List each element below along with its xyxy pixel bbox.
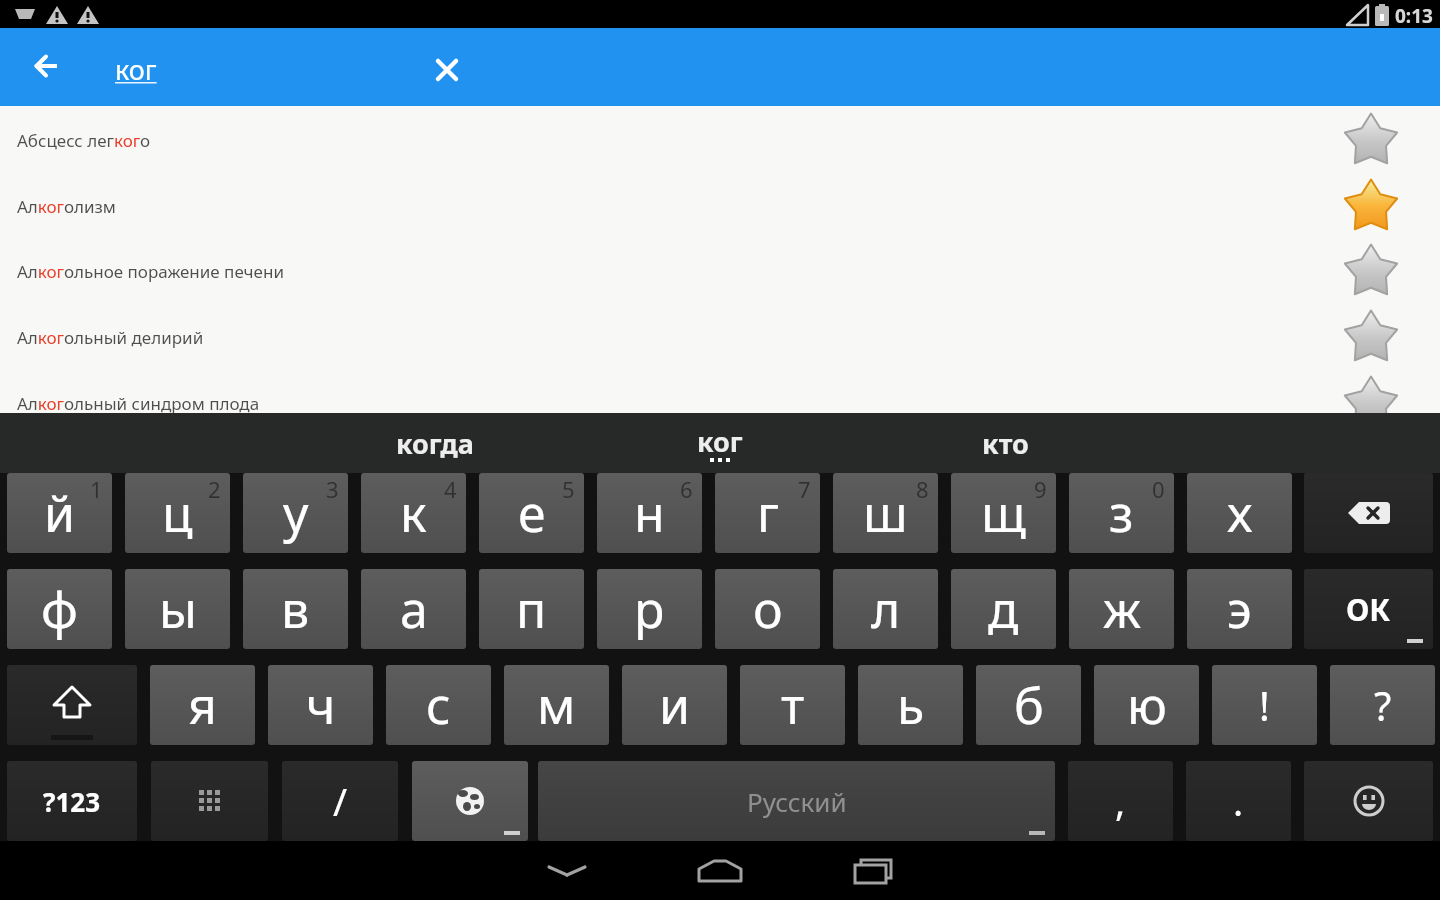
staticText: , <box>1115 775 1126 827</box>
button[interactable]: я <box>150 665 255 745</box>
staticText: ш <box>863 479 908 547</box>
button[interactable]: ь <box>858 665 963 745</box>
button[interactable]: Абсцесс легкого <box>0 107 1440 173</box>
button[interactable]: ш <box>833 473 938 553</box>
button[interactable] <box>1343 112 1399 168</box>
staticText: 0:13 <box>1395 3 1433 29</box>
button[interactable] <box>837 841 909 900</box>
staticText: д <box>988 575 1019 643</box>
button[interactable]: ю <box>1094 665 1199 745</box>
button[interactable] <box>1304 761 1433 841</box>
button[interactable]: ког <box>635 413 805 473</box>
button[interactable]: н <box>597 473 702 553</box>
button[interactable]: кто <box>920 413 1090 473</box>
button[interactable]: ОК <box>1304 569 1433 649</box>
staticText: и <box>659 671 691 739</box>
button[interactable] <box>151 761 268 841</box>
staticText: в <box>281 575 310 643</box>
staticText: 5 <box>562 474 575 504</box>
staticText: 1 <box>90 474 103 504</box>
button[interactable]: л <box>833 569 938 649</box>
button[interactable]: когда <box>350 413 520 473</box>
button[interactable]: з <box>1069 473 1174 553</box>
button[interactable]: о <box>715 569 820 649</box>
staticText: к <box>400 479 427 547</box>
button[interactable]: е <box>479 473 584 553</box>
button[interactable] <box>423 46 471 94</box>
button[interactable]: Русский <box>538 761 1055 841</box>
staticText: Алкогольный синдром плода <box>17 392 260 413</box>
staticText: ?123 <box>43 784 101 819</box>
button[interactable]: и <box>622 665 727 745</box>
button[interactable] <box>1343 309 1399 365</box>
button[interactable]: ц <box>125 473 230 553</box>
button[interactable]: Алкогольный делирий <box>0 304 1440 370</box>
staticText: 2 <box>208 474 221 504</box>
staticText: 6 <box>680 474 693 504</box>
staticText: щ <box>981 479 1026 547</box>
staticText: 8 <box>916 474 929 504</box>
button[interactable]: м <box>504 665 609 745</box>
staticText: л <box>871 575 901 643</box>
button[interactable]: т <box>740 665 845 745</box>
button[interactable]: ч <box>268 665 373 745</box>
button[interactable]: Алкогольное поражение печени <box>0 238 1440 304</box>
staticText: з <box>1109 479 1134 547</box>
staticText: б <box>1014 671 1044 739</box>
staticText: р <box>634 575 665 643</box>
button[interactable]: щ <box>951 473 1056 553</box>
button[interactable]: ?123 <box>7 761 137 841</box>
button[interactable]: с <box>386 665 491 745</box>
staticText: о <box>753 575 783 643</box>
button[interactable]: р <box>597 569 702 649</box>
button[interactable]: ы <box>125 569 230 649</box>
button[interactable]: п <box>479 569 584 649</box>
staticText: 3 <box>326 474 339 504</box>
button[interactable]: . <box>1186 761 1291 841</box>
staticText: Алкогольный делирий <box>17 326 204 349</box>
staticText: 0 <box>1152 474 1165 504</box>
staticText: н <box>634 479 665 547</box>
button[interactable] <box>23 42 71 90</box>
button[interactable]: , <box>1068 761 1173 841</box>
staticText: ь <box>897 671 925 739</box>
staticText: ког <box>115 51 157 88</box>
button[interactable]: ! <box>1212 665 1317 745</box>
button[interactable]: к <box>361 473 466 553</box>
staticText: ч <box>306 671 336 739</box>
button[interactable]: / <box>282 761 398 841</box>
button[interactable]: б <box>976 665 1081 745</box>
button[interactable]: Алкоголизм <box>0 173 1440 239</box>
button[interactable]: ? <box>1330 665 1435 745</box>
button[interactable]: у <box>243 473 348 553</box>
staticText: с <box>426 671 451 739</box>
staticText: когда <box>396 425 474 462</box>
button[interactable]: й <box>7 473 112 553</box>
button[interactable] <box>684 841 756 900</box>
button[interactable]: г <box>715 473 820 553</box>
button[interactable]: а <box>361 569 466 649</box>
staticText: у <box>283 479 309 547</box>
button[interactable]: ж <box>1069 569 1174 649</box>
staticText: 4 <box>444 474 457 504</box>
button[interactable] <box>1343 243 1399 299</box>
button[interactable]: х <box>1187 473 1292 553</box>
button[interactable] <box>7 665 137 745</box>
button[interactable] <box>1343 375 1399 413</box>
button[interactable] <box>1343 178 1399 234</box>
staticText: ж <box>1103 575 1141 643</box>
staticText: ы <box>159 575 197 643</box>
button[interactable]: в <box>243 569 348 649</box>
staticText: 9 <box>1034 474 1047 504</box>
staticText: ког <box>697 423 743 460</box>
staticText: кто <box>982 425 1029 462</box>
button[interactable] <box>1304 473 1433 553</box>
button[interactable] <box>531 841 603 900</box>
button[interactable]: ф <box>7 569 112 649</box>
button[interactable]: д <box>951 569 1056 649</box>
button[interactable]: э <box>1187 569 1292 649</box>
button[interactable]: ког <box>100 49 400 89</box>
staticText: . <box>1233 775 1244 827</box>
button[interactable]: Алкогольный синдром плода <box>0 370 1440 413</box>
button[interactable] <box>412 761 528 841</box>
